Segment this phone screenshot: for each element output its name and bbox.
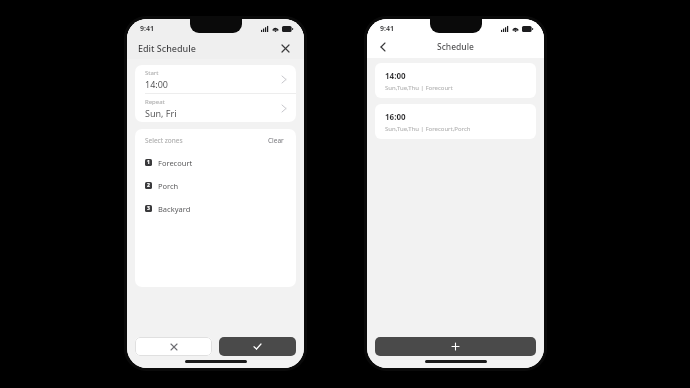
- button[interactable]: Cancel: [135, 337, 212, 356]
- button[interactable]: Clear: [266, 134, 286, 147]
- staticText: 2: [147, 182, 150, 189]
- staticText: Sun, Fri: [145, 107, 177, 119]
- button[interactable]: Close: [277, 40, 293, 56]
- staticText: Clear: [268, 136, 284, 145]
- staticText: Sun,Tue,Thu | Forecourt,Porch: [385, 125, 471, 133]
- staticText: Sun,Tue,Thu | Forecourt: [385, 84, 453, 92]
- staticText: Backyard: [158, 204, 191, 214]
- staticText: 9:41: [140, 24, 154, 34]
- button[interactable]: Repeat: [135, 94, 296, 122]
- staticText: Schedule: [437, 41, 474, 53]
- button[interactable]: Confirm: [219, 337, 296, 356]
- staticText: 14:00: [385, 70, 406, 81]
- button[interactable]: Back: [376, 40, 390, 54]
- button[interactable]: 16:00: [375, 104, 536, 139]
- staticText: Start: [145, 69, 159, 77]
- button[interactable]: 3: [135, 197, 296, 220]
- button[interactable]: 1: [135, 151, 296, 174]
- button[interactable]: Start: [135, 65, 296, 93]
- staticText: Repeat: [145, 98, 165, 106]
- staticText: 14:00: [145, 78, 169, 90]
- staticText: 9:41: [380, 24, 394, 34]
- button[interactable]: Add schedule: [375, 337, 536, 356]
- staticText: Edit Schedule: [138, 42, 196, 54]
- staticText: Porch: [158, 181, 179, 191]
- button[interactable]: 14:00: [375, 63, 536, 98]
- staticText: Select zones: [145, 136, 183, 145]
- button[interactable]: 2: [135, 174, 296, 197]
- staticText: Forecourt: [158, 158, 193, 168]
- staticText: 3: [147, 205, 150, 212]
- staticText: 1: [147, 159, 150, 166]
- staticText: 16:00: [385, 111, 406, 122]
